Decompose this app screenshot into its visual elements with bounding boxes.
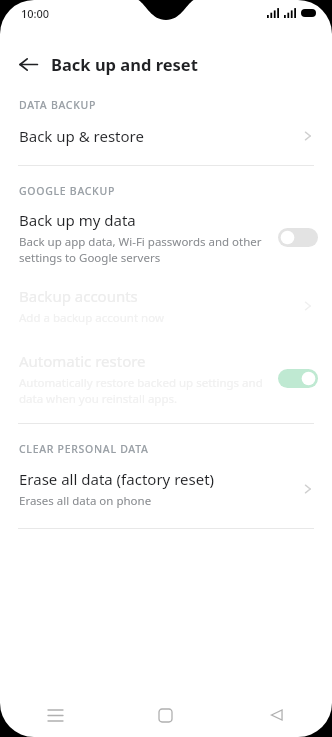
button[interactable]: Backup accounts — [0, 286, 332, 326]
button[interactable]: Back — [10, 46, 46, 82]
button[interactable]: Home — [110, 693, 221, 737]
button[interactable]: Toggle on — [278, 369, 318, 388]
button[interactable]: Erase all data (factory reset) — [0, 469, 332, 509]
button[interactable]: Back — [221, 693, 332, 737]
staticText: Back up app data, Wi-Fi passwords and ot… — [19, 234, 262, 265]
button[interactable]: Back up my data — [0, 210, 332, 265]
staticText: Backup accounts — [19, 286, 138, 306]
button[interactable]: Back up & restore — [0, 126, 332, 146]
staticText: 10:00 — [21, 6, 50, 21]
staticText: Back up my data — [19, 210, 136, 230]
staticText: GOOGLE BACKUP — [19, 184, 116, 198]
button[interactable]: Recents — [0, 693, 110, 737]
staticText: Automatic restore — [19, 351, 146, 371]
staticText: Erase all data (factory reset) — [19, 469, 215, 489]
staticText: Automatically restore backed up settings… — [19, 375, 263, 406]
staticText: Erases all data on phone — [19, 493, 152, 509]
staticText: Back up and reset — [51, 53, 198, 75]
staticText: Back up & restore — [19, 126, 300, 146]
staticText: CLEAR PERSONAL DATA — [19, 442, 149, 456]
button[interactable]: Automatic restore — [0, 351, 332, 406]
button[interactable]: Toggle off — [278, 228, 318, 247]
staticText: DATA BACKUP — [19, 98, 97, 112]
staticText: Add a backup account now — [19, 310, 164, 326]
